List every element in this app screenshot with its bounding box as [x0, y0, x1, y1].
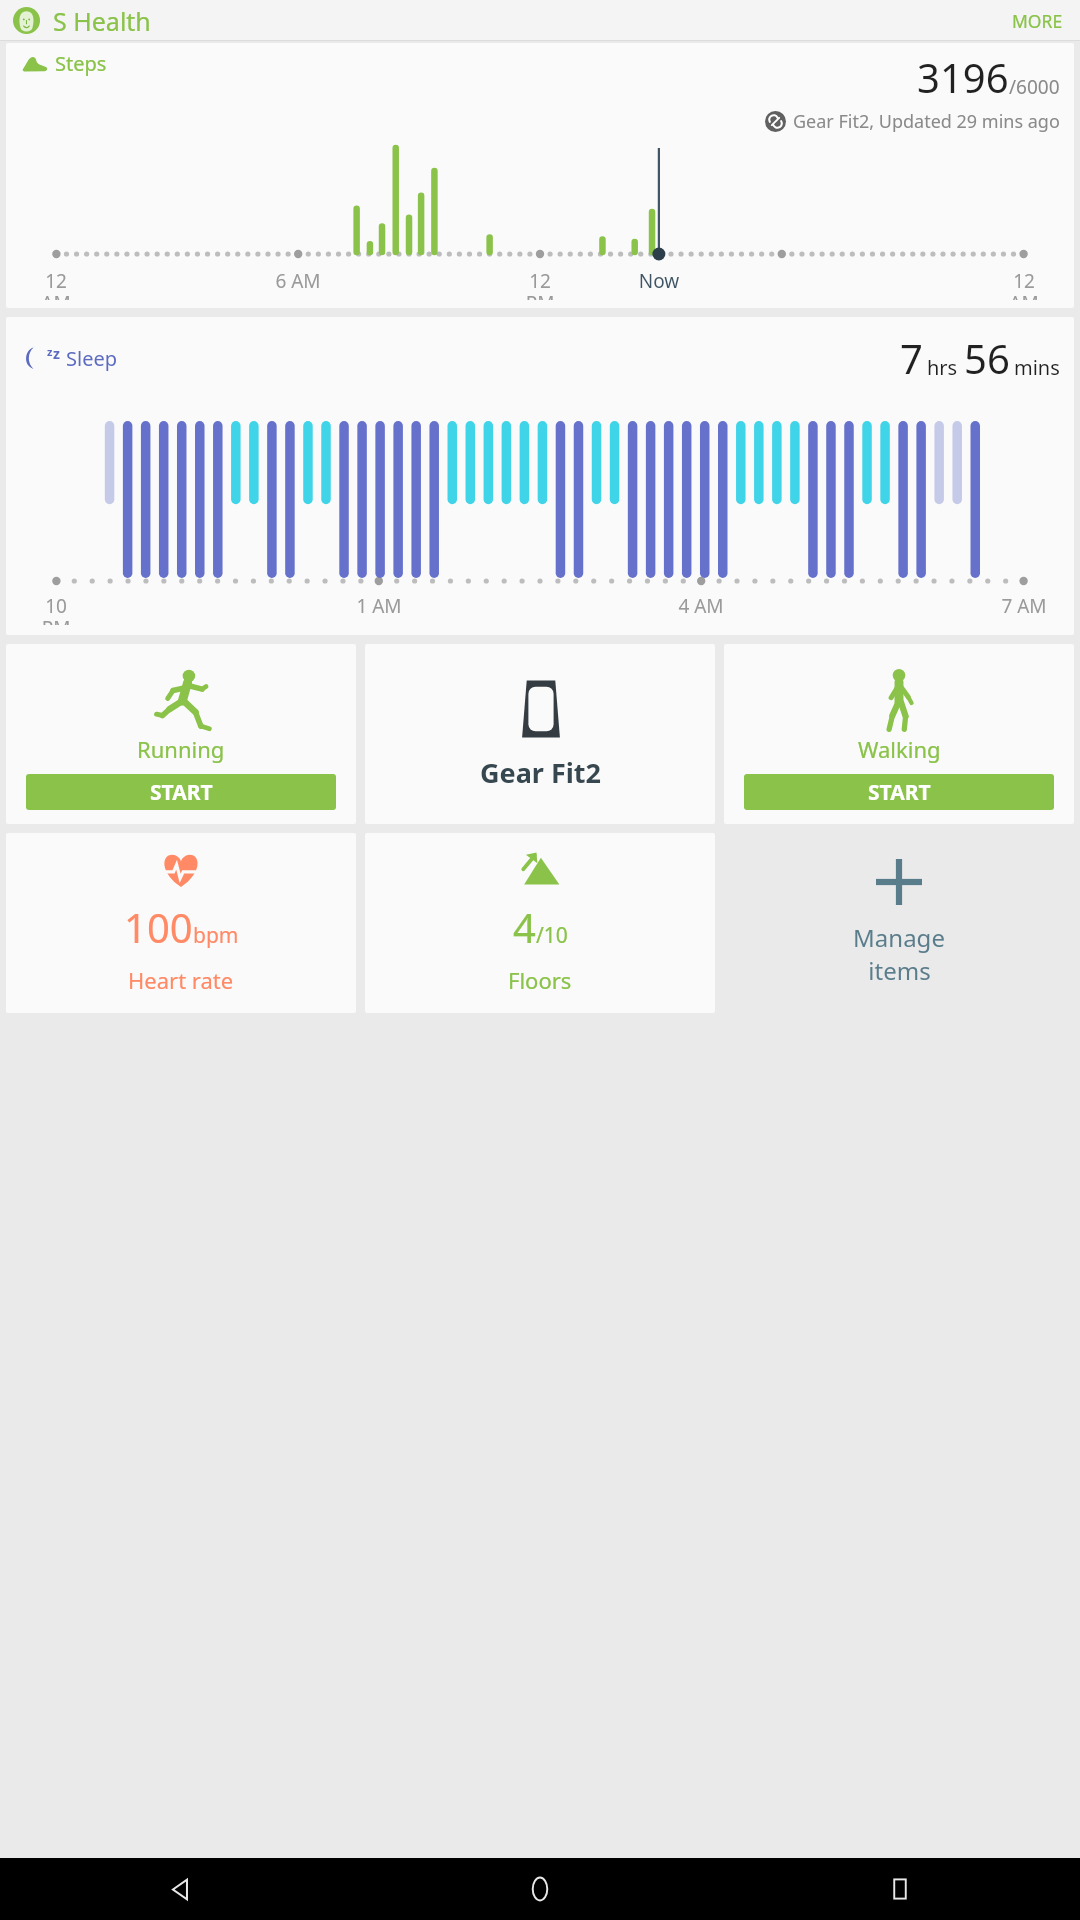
button[interactable]: z: [6, 317, 1074, 635]
staticText: Steps: [55, 50, 107, 77]
staticText: 3196: [917, 50, 1009, 104]
button[interactable]: Profile: [13, 7, 40, 34]
button[interactable]: Manage: [724, 833, 1074, 1013]
staticText: /10: [536, 921, 568, 950]
staticText: 1 AM: [353, 593, 405, 619]
button[interactable]: START: [744, 774, 1054, 810]
staticText: Gear Fit2: [480, 754, 601, 791]
staticText: 10 PM: [30, 593, 82, 625]
staticText: START: [868, 778, 931, 807]
staticText: bpm: [193, 921, 239, 950]
staticText: Walking: [858, 734, 941, 764]
staticText: Now: [633, 268, 685, 294]
staticText: Gear Fit2, Updated 29 mins ago: [793, 109, 1060, 134]
button[interactable]: Running: [6, 644, 356, 824]
staticText: Heart rate: [128, 965, 234, 995]
staticText: 12 AM: [998, 268, 1050, 300]
staticText: 12 AM: [30, 268, 82, 300]
staticText: hrs: [927, 354, 958, 381]
button[interactable]: 100: [6, 833, 356, 1013]
staticText: Sleep: [66, 345, 117, 372]
button[interactable]: Gear Fit2: [365, 644, 715, 824]
staticText: 6 AM: [272, 268, 324, 294]
staticText: /6000: [1009, 74, 1060, 100]
button[interactable]: 4: [365, 833, 715, 1013]
button[interactable]: Steps: [6, 43, 1074, 308]
staticText: Floors: [508, 965, 572, 995]
staticText: items: [868, 954, 931, 987]
staticText: 100: [124, 900, 193, 954]
button[interactable]: MORE: [1008, 3, 1067, 39]
staticText: 4: [513, 900, 536, 954]
staticText: S Health: [53, 4, 151, 38]
staticText: START: [150, 778, 213, 807]
staticText: Manage: [853, 921, 945, 954]
staticText: z: [47, 344, 53, 359]
button[interactable]: START: [26, 774, 336, 810]
staticText: 7 AM: [998, 593, 1050, 619]
staticText: MORE: [1012, 9, 1063, 33]
button[interactable]: Walking: [724, 644, 1074, 824]
staticText: 12 PM: [514, 268, 566, 300]
staticText: Running: [137, 734, 225, 764]
staticText: 7: [900, 331, 923, 385]
staticText: 4 AM: [675, 593, 727, 619]
button[interactable]: Home: [360, 1858, 720, 1920]
button[interactable]: Back: [0, 1858, 360, 1920]
staticText: z: [53, 344, 60, 363]
staticText: mins: [1014, 354, 1060, 381]
staticText: 56: [964, 331, 1010, 385]
button[interactable]: Recent apps: [720, 1858, 1080, 1920]
